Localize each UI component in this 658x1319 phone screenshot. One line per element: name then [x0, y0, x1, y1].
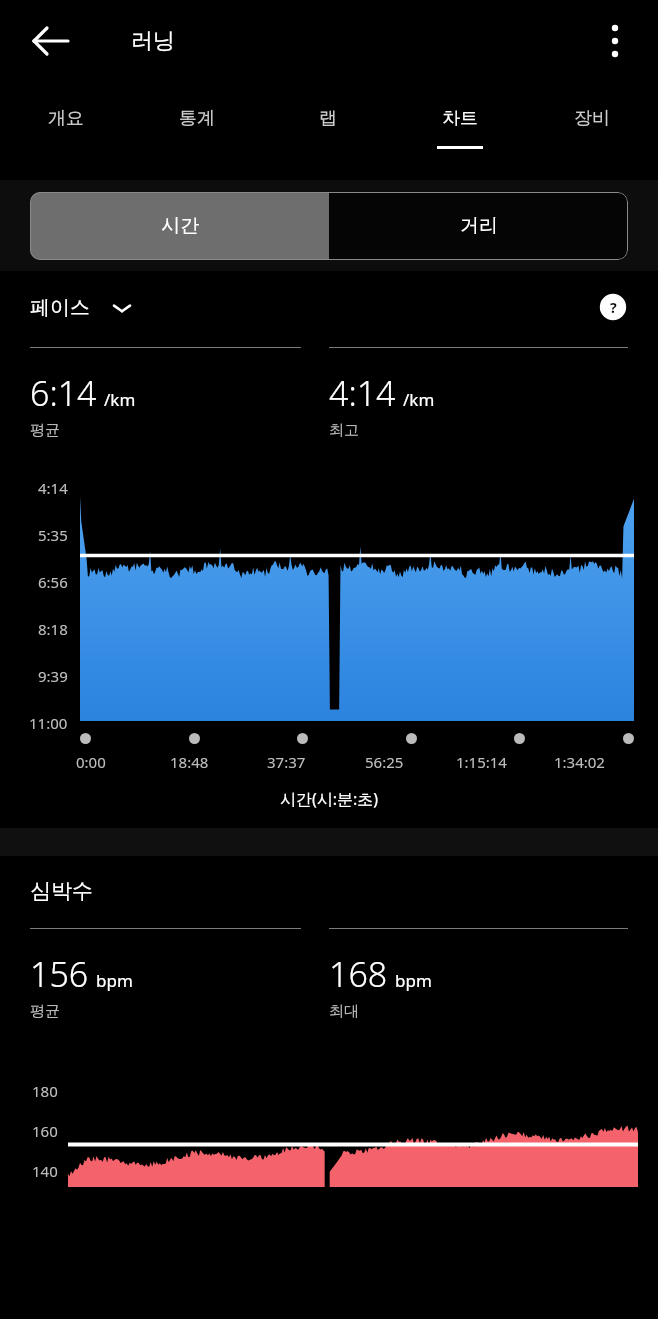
staticText: 5:35 — [38, 525, 68, 545]
staticText: 시간 — [161, 214, 199, 238]
staticText: 평균 — [30, 421, 60, 440]
staticText: 러닝 — [131, 27, 175, 55]
button[interactable]: 차트 — [394, 82, 526, 180]
staticText: 8:18 — [38, 619, 68, 639]
staticText: 개요 — [48, 107, 84, 130]
button[interactable]: 랩 — [262, 82, 394, 180]
button[interactable]: 시간 — [30, 192, 329, 260]
staticText: 160 — [32, 1121, 58, 1141]
staticText: 140 — [32, 1161, 58, 1181]
staticText: 4:14 — [38, 478, 68, 498]
staticText: 최고 — [329, 421, 359, 440]
staticText: 9:39 — [38, 666, 68, 686]
staticText: bpm — [395, 969, 432, 992]
staticText: 심박수 — [30, 878, 93, 904]
staticText: 56:25 — [365, 752, 404, 772]
staticText: 156 — [30, 951, 89, 997]
button[interactable]: 거리 — [329, 192, 628, 260]
button[interactable]: 페이스 — [30, 295, 132, 320]
staticText: bpm — [96, 969, 133, 992]
button[interactable]: Help — [598, 292, 628, 322]
staticText: 랩 — [319, 107, 337, 130]
staticText: 4:14 — [329, 370, 396, 416]
staticText: 11:00 — [29, 713, 68, 733]
staticText: 차트 — [442, 107, 478, 130]
staticText: ? — [610, 298, 617, 317]
staticText: 6:56 — [38, 572, 68, 592]
staticText: /km — [403, 388, 435, 411]
staticText: 6:14 — [30, 370, 97, 416]
staticText: 168 — [329, 951, 388, 997]
staticText: 평균 — [30, 1002, 60, 1021]
staticText: 180 — [32, 1081, 58, 1101]
button[interactable]: More options — [592, 18, 638, 64]
staticText: 0:00 — [76, 752, 106, 772]
staticText: 18:48 — [170, 752, 209, 772]
button[interactable]: 개요 — [0, 82, 131, 180]
staticText: /km — [104, 388, 136, 411]
staticText: 거리 — [460, 214, 498, 238]
button[interactable]: 통계 — [131, 82, 262, 180]
staticText: 시간(시:분:초) — [0, 788, 658, 810]
staticText: 통계 — [179, 107, 215, 130]
button[interactable]: Back — [26, 16, 76, 66]
staticText: 페이스 — [30, 295, 90, 320]
staticText: 장비 — [574, 107, 610, 130]
staticText: 37:37 — [267, 752, 306, 772]
staticText: 최대 — [329, 1002, 359, 1021]
button[interactable]: 장비 — [526, 82, 658, 180]
staticText: 1:15:14 — [456, 752, 507, 772]
staticText: 1:34:02 — [554, 752, 605, 772]
